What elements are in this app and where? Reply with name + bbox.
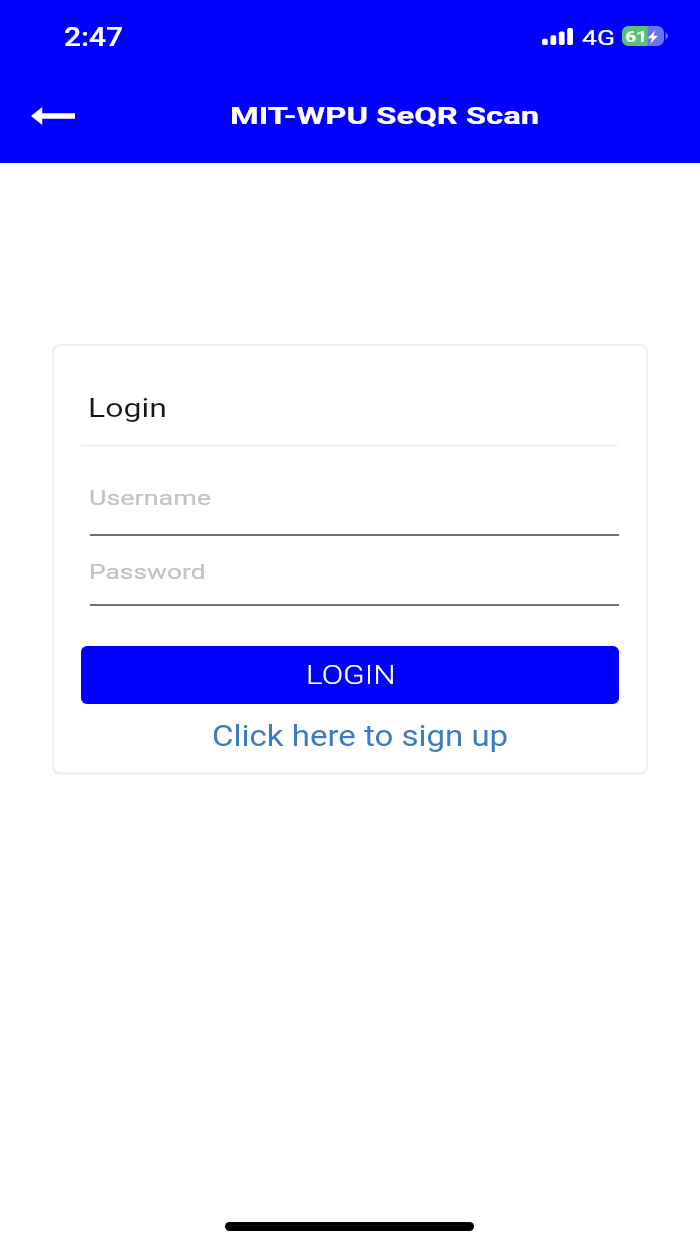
staticText: 4G bbox=[582, 27, 616, 50]
button[interactable]: Username bbox=[90, 474, 619, 536]
staticText: MIT-WPU SeQR Scan bbox=[230, 101, 540, 130]
button[interactable]: Click here to sign up bbox=[81, 710, 619, 766]
staticText: Login bbox=[88, 393, 167, 424]
staticText: Password bbox=[89, 560, 206, 583]
button[interactable]: Back bbox=[8, 86, 97, 146]
other: Battery 61 percent, charging bbox=[622, 26, 670, 47]
staticText: LOGIN bbox=[306, 660, 396, 690]
staticText: 61 bbox=[625, 27, 648, 46]
other: Cellular signal strength bbox=[542, 28, 573, 45]
staticText: Click here to sign up bbox=[212, 719, 509, 753]
staticText: Username bbox=[89, 486, 211, 509]
button[interactable]: LOGIN bbox=[81, 646, 619, 704]
staticText: 2:47 bbox=[64, 21, 124, 52]
button[interactable]: Password bbox=[90, 544, 619, 606]
